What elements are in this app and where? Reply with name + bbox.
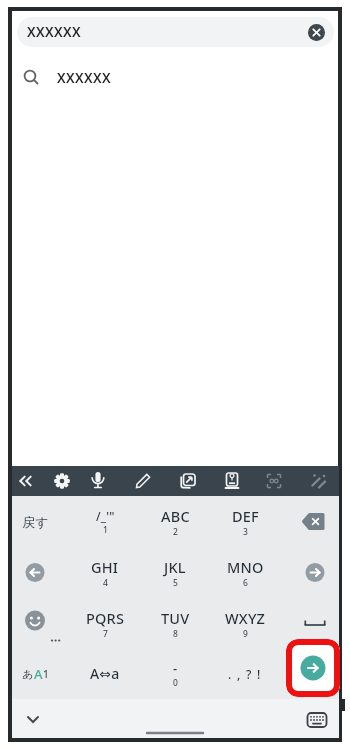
button[interactable]: A⇔a	[72, 648, 138, 699]
staticText: あ	[22, 667, 34, 681]
button[interactable]	[286, 639, 340, 697]
button[interactable]: GHI	[72, 547, 138, 598]
button[interactable]: JKL	[142, 547, 208, 598]
button[interactable]: ABC	[142, 496, 208, 547]
staticText: 戻す	[22, 514, 49, 530]
staticText: 6	[243, 577, 248, 589]
staticText: GHI	[91, 557, 119, 577]
staticText: 7	[103, 628, 108, 640]
staticText: 4	[103, 577, 108, 589]
staticText: WXYZ	[225, 608, 266, 628]
staticText: 2	[173, 526, 178, 538]
staticText: 0	[173, 677, 178, 689]
button[interactable]: PQRS	[72, 598, 138, 649]
staticText: 1	[103, 524, 108, 536]
staticText: MNO	[227, 557, 264, 577]
button[interactable]: /_'"	[72, 496, 138, 547]
button[interactable]	[282, 547, 348, 598]
staticText: 8	[173, 628, 178, 640]
button[interactable]: MNO	[212, 547, 278, 598]
staticText: 1	[43, 667, 49, 681]
staticText: . , ? !	[228, 666, 262, 682]
button[interactable]: XXXXXX	[17, 64, 334, 92]
staticText: PQRS	[86, 608, 125, 628]
staticText: XXXXXX	[27, 23, 82, 41]
button[interactable]	[2, 547, 68, 598]
button[interactable]	[282, 496, 348, 547]
button[interactable]: . , ? !	[212, 648, 278, 699]
button[interactable]: DEF	[212, 496, 278, 547]
staticText: ABC	[161, 506, 190, 526]
button[interactable]: WXYZ	[212, 598, 278, 649]
staticText: A	[34, 665, 43, 683]
button[interactable]: TUV	[142, 598, 208, 649]
button[interactable]: 戻す	[2, 496, 68, 547]
button[interactable]	[12, 466, 339, 496]
button[interactable]	[2, 598, 68, 649]
staticText: TUV	[161, 608, 190, 628]
button[interactable]: -	[142, 648, 208, 699]
staticText: 5	[173, 577, 178, 589]
button[interactable]: あ	[2, 648, 68, 699]
button[interactable]: XXXXXX	[17, 17, 334, 47]
staticText: DEF	[232, 506, 259, 526]
button[interactable]	[282, 598, 348, 649]
staticText: -	[173, 659, 178, 677]
staticText: A⇔a	[90, 664, 120, 683]
staticText: 9	[243, 628, 248, 640]
staticText: /_'"	[96, 508, 115, 524]
staticText: 3	[243, 526, 248, 538]
staticText: JKL	[164, 557, 186, 577]
staticText: XXXXXX	[57, 69, 112, 87]
